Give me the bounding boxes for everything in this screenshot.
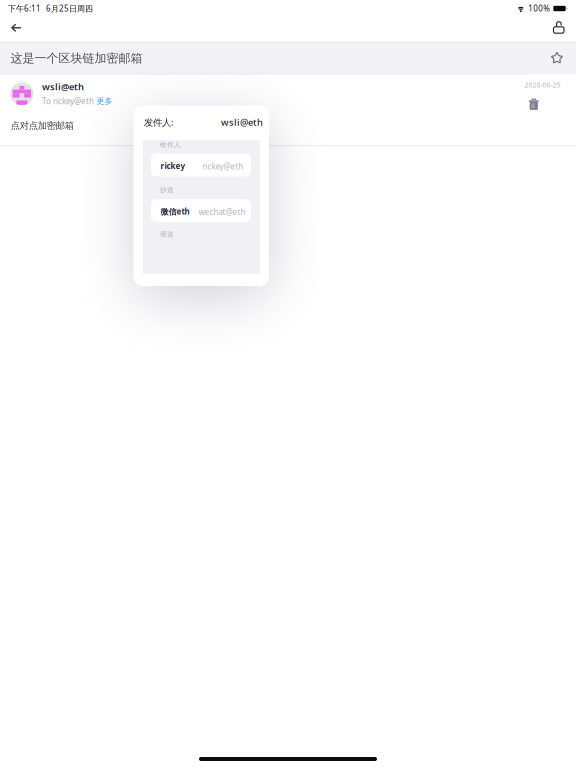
staticText: 收件人 (160, 141, 181, 149)
staticText: 下午6:11 (8, 3, 41, 14)
staticText: 这是一个区块链加密邮箱 (10, 51, 142, 65)
button[interactable]: rickey (151, 153, 251, 176)
button[interactable]: Star (550, 52, 576, 64)
button[interactable]: 更多 (94, 96, 112, 106)
staticText: 微信eth (160, 206, 189, 217)
staticText: 100% (528, 3, 550, 14)
button[interactable]: 微信eth (151, 199, 251, 222)
staticText: 点对点加密邮箱 (11, 120, 74, 131)
staticText: 更多 (96, 96, 112, 106)
staticText: rickey (160, 160, 185, 171)
button[interactable]: Encryption (532, 17, 566, 42)
staticText: wechat@eth (198, 207, 245, 217)
staticText: 发件人: (144, 116, 174, 128)
staticText: wsli@eth (42, 80, 84, 93)
button[interactable]: Back (10, 17, 44, 42)
staticText: 抄送 (160, 186, 174, 194)
staticText: wsli@eth (221, 116, 263, 128)
staticText: rickey@eth (202, 161, 243, 172)
staticText: 2020-06-25 (524, 80, 560, 89)
staticText: 密送 (160, 230, 174, 238)
staticText: 6月25日周四 (46, 3, 93, 14)
staticText: To rickey@eth (42, 96, 94, 106)
button[interactable]: Delete (529, 95, 551, 113)
